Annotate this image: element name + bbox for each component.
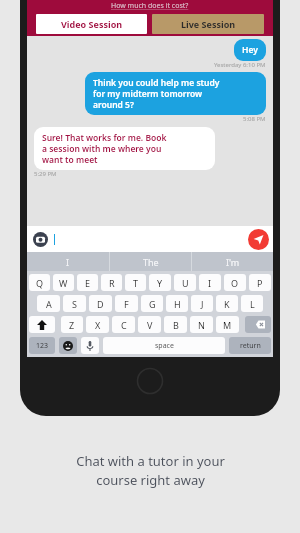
staticText: A [46,298,52,310]
button[interactable]: U [174,274,196,291]
staticText: Chat with a tutor in your course right a… [76,452,225,489]
button[interactable]: O [224,274,246,291]
staticText: How much does it cost? [111,1,189,11]
staticText: Video Session [61,18,123,30]
staticText: M [223,319,232,331]
button[interactable]: I [27,252,109,271]
button[interactable]: P [249,274,271,291]
staticText: Live Session [181,18,236,30]
staticText: L [250,298,255,310]
button[interactable]: Live Session [152,14,264,34]
staticText: S [72,298,77,310]
staticText: C [121,319,127,331]
staticText: W [59,277,68,289]
button[interactable]: I [199,274,221,291]
button[interactable]: Camera [33,232,48,247]
staticText: R [109,277,115,289]
staticText: H [174,298,181,310]
staticText: The [143,256,159,268]
staticText: Sure! That works for me. Book a session … [42,132,167,165]
staticText: 5:08 PM [243,115,266,123]
button[interactable]: Shift [29,316,55,333]
staticText: 5:29 PM [34,170,57,178]
button[interactable]: C [112,316,135,333]
staticText: V [147,319,153,331]
staticText: I [208,277,212,289]
staticText: I'm [226,256,240,268]
staticText: G [149,298,156,310]
staticText: K [224,298,230,310]
staticText: I [66,256,70,268]
staticText: J [201,298,204,310]
staticText: Hey [242,44,258,56]
staticText: Z [69,319,75,331]
button[interactable]: M [216,316,239,333]
staticText: O [231,277,239,289]
button[interactable]: return [229,337,271,354]
button[interactable]: I'm [192,252,273,271]
button[interactable]: Hey [234,39,266,61]
staticText: E [85,277,91,289]
button[interactable]: T [125,274,146,291]
button[interactable]: H [166,295,188,312]
button[interactable]: B [164,316,187,333]
button[interactable]: A [37,295,60,312]
button[interactable]: Backspace [245,316,271,333]
button[interactable]: R [101,274,122,291]
button[interactable]: D [89,295,112,312]
button[interactable]: Emoji [59,337,77,354]
staticText: D [97,298,104,310]
button[interactable]: Y [149,274,171,291]
staticText: space [155,341,174,351]
button[interactable]: Send [248,229,269,250]
button[interactable]: The [110,252,191,271]
button[interactable]: Think you could help me study for my mid… [85,72,266,115]
staticText: T [133,277,139,289]
button[interactable]: X [86,316,109,333]
button[interactable]: Q [29,274,50,291]
staticText: P [257,277,263,289]
button[interactable]: Z [61,316,83,333]
button[interactable]: K [216,295,238,312]
button[interactable]: S [63,295,86,312]
staticText: Q [36,277,44,289]
staticText: Think you could help me study for my mid… [93,77,220,110]
button[interactable]: 123 [29,337,55,354]
button[interactable]: J [191,295,213,312]
button[interactable]: F [115,295,138,312]
button[interactable]: W [53,274,74,291]
button[interactable]: L [241,295,263,312]
button[interactable]: G [141,295,163,312]
button[interactable]: Video Session [36,14,147,34]
staticText: U [182,277,189,289]
staticText: F [124,298,129,310]
staticText: return [240,341,261,351]
staticText: 123 [36,341,49,351]
button[interactable]: E [77,274,98,291]
button[interactable]: N [190,316,213,333]
button[interactable]: V [138,316,161,333]
staticText: Yesterday 6:10 PM [214,61,266,69]
button[interactable]: Sure! That works for me. Book a session … [34,127,215,170]
button[interactable]: space [103,337,225,354]
staticText: Y [157,277,163,289]
staticText: B [173,319,179,331]
staticText: X [95,319,101,331]
button[interactable]: Microphone [81,337,99,354]
staticText: N [198,319,205,331]
